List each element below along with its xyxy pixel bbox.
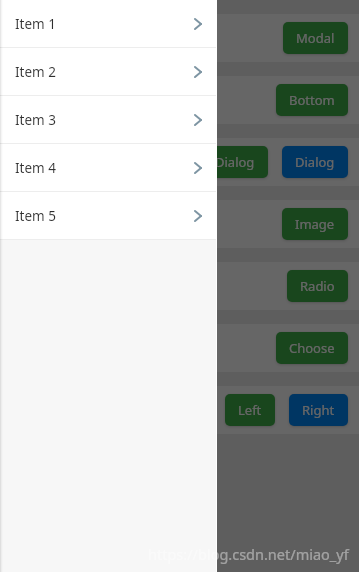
staticText: https://blog.csdn.net/miao_yf bbox=[148, 544, 349, 564]
button[interactable]: Item 5 bbox=[0, 192, 217, 239]
other: Open Item 2 bbox=[194, 66, 202, 78]
staticText: Modal bbox=[296, 29, 335, 47]
button[interactable]: Item 3 bbox=[0, 96, 217, 143]
button[interactable]: Item 4 bbox=[0, 144, 217, 191]
staticText: Radio bbox=[300, 277, 335, 295]
other: Open Item 4 bbox=[194, 162, 202, 174]
staticText: Item 1 bbox=[15, 15, 56, 33]
staticText: Dialog bbox=[215, 153, 255, 171]
staticText: Left bbox=[238, 401, 262, 419]
staticText: Bottom bbox=[289, 91, 335, 109]
staticText: Dialog bbox=[295, 153, 335, 171]
staticText: Image bbox=[295, 215, 335, 233]
button[interactable]: Image bbox=[282, 208, 348, 240]
staticText: Item 2 bbox=[15, 63, 56, 81]
button[interactable]: Dialog bbox=[282, 146, 348, 178]
button[interactable]: Choose bbox=[276, 332, 348, 364]
other: Open Item 5 bbox=[194, 210, 202, 222]
button[interactable]: Item 2 bbox=[0, 48, 217, 95]
button[interactable]: Item 1 bbox=[0, 0, 217, 47]
button[interactable]: Left bbox=[225, 394, 275, 426]
button[interactable]: Radio bbox=[287, 270, 348, 302]
button[interactable]: Dialog bbox=[202, 146, 268, 178]
staticText: Item 4 bbox=[15, 159, 56, 177]
button[interactable]: Bottom bbox=[276, 84, 348, 116]
button[interactable]: Right bbox=[289, 394, 348, 426]
other: Open Item 1 bbox=[194, 18, 202, 30]
staticText: Item 5 bbox=[15, 207, 56, 225]
staticText: Item 3 bbox=[15, 111, 56, 129]
staticText: Right bbox=[302, 401, 335, 419]
other: Open Item 3 bbox=[194, 114, 202, 126]
staticText: Choose bbox=[289, 339, 335, 357]
button[interactable]: Modal bbox=[283, 22, 348, 54]
